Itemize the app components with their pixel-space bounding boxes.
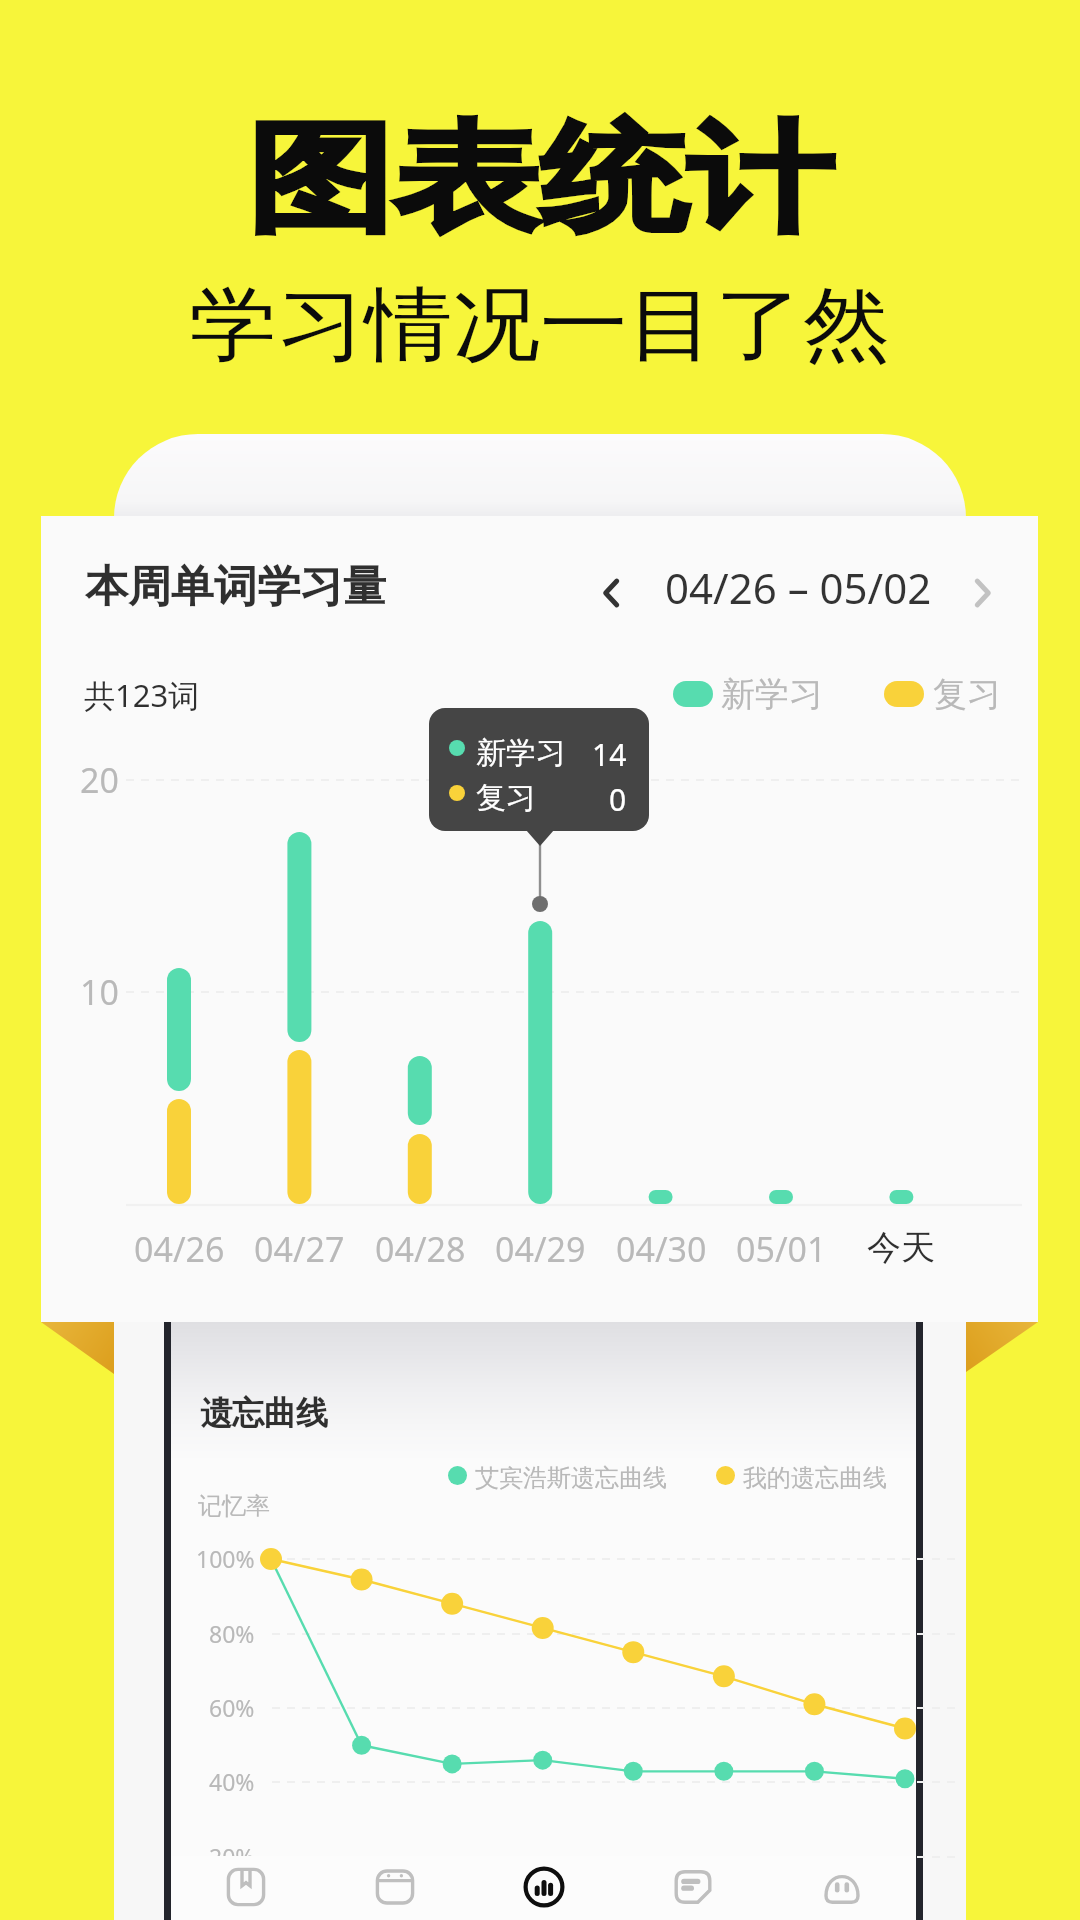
button[interactable]: Word book (171, 1862, 320, 1912)
staticText: 04/28 (375, 1226, 466, 1272)
staticText: 14 (592, 734, 627, 775)
staticText: 共123词 (84, 674, 200, 716)
staticText: 遗忘曲线 (200, 1393, 328, 1433)
staticText: 100% (196, 1543, 255, 1574)
staticText: 80% (209, 1618, 255, 1649)
staticText: 新学习 (476, 734, 566, 772)
staticText: 04/27 (254, 1226, 345, 1272)
staticText: 60% (209, 1692, 255, 1723)
staticText: 04/26 – 05/02 (665, 559, 932, 616)
button[interactable]: Previous week (588, 569, 636, 617)
staticText: 学习情况一目了然 (190, 275, 890, 376)
staticText: 复习 (933, 673, 1001, 716)
staticText: 记忆率 (198, 1491, 270, 1521)
staticText: 艾宾浩斯遗忘曲线 (475, 1463, 667, 1493)
button[interactable]: Statistics (469, 1862, 618, 1912)
button[interactable]: 04/26 – 05/02 (660, 557, 936, 617)
staticText: 40% (209, 1766, 255, 1797)
button[interactable]: Profile (767, 1862, 916, 1912)
button[interactable]: 新学习 (673, 668, 823, 720)
staticText: 复习 (476, 779, 536, 817)
button[interactable]: Cards (320, 1862, 469, 1912)
button[interactable]: Notes (618, 1862, 767, 1912)
staticText: 本周单词学习量 (85, 560, 386, 614)
staticText: 04/26 (134, 1226, 225, 1272)
staticText: 我的遗忘曲线 (743, 1463, 887, 1493)
staticText: 20% (209, 1841, 255, 1872)
staticText: 04/30 (616, 1226, 707, 1272)
staticText: 新学习 (721, 673, 823, 716)
staticText: 10 (80, 969, 119, 1015)
staticText: 0 (609, 779, 627, 820)
staticText: 今天 (867, 1226, 935, 1269)
button[interactable]: Next week (958, 569, 1006, 617)
staticText: 20 (80, 757, 119, 803)
staticText: 05/01 (736, 1226, 827, 1272)
staticText: 图表统计 (246, 105, 834, 254)
button[interactable]: 复习 (884, 668, 1001, 720)
staticText: 04/29 (495, 1226, 586, 1272)
